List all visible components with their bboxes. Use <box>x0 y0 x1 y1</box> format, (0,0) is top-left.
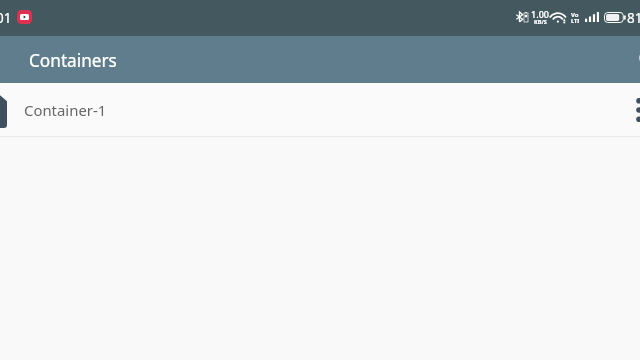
staticText: Containers <box>29 49 117 72</box>
staticText: Container-1 <box>24 100 107 120</box>
staticText: 81 <box>627 9 640 27</box>
staticText: Vo <box>571 11 579 19</box>
staticText: 01 <box>0 9 12 27</box>
staticText: KB/S <box>534 18 547 26</box>
staticText: LTE <box>571 17 579 25</box>
button[interactable]: More options <box>621 86 640 134</box>
staticText: 1.00 <box>531 8 549 20</box>
button[interactable]: Search <box>627 38 640 82</box>
button[interactable]: Container-1 <box>0 83 640 136</box>
